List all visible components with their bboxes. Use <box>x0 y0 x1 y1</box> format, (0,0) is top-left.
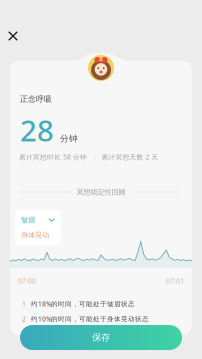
staticText: 正念呼吸 <box>20 94 52 104</box>
staticText: 2 <box>22 314 26 324</box>
button[interactable]: 保存 <box>20 325 182 350</box>
staticText: 保存 <box>92 332 110 343</box>
button[interactable]: 身体晃动 <box>21 228 55 242</box>
staticText: 身体晃动 <box>21 230 49 240</box>
staticText: 约10%的时间，可能处于身体晃动状态 <box>31 314 149 323</box>
button[interactable]: 皱眉 <box>21 213 55 227</box>
staticText: 累计冥想天数 2 天 <box>102 152 159 162</box>
button[interactable]: Close <box>1 24 25 48</box>
staticText: 约18%的时间，可能处于皱眉状态 <box>31 299 135 308</box>
staticText: 皱眉 <box>21 215 35 225</box>
staticText: 1 <box>22 299 26 309</box>
staticText: 累计冥想时长 58 分钟 <box>19 152 87 162</box>
staticText: 分钟 <box>60 133 78 144</box>
staticText: 冥想稳定性回顾 <box>76 187 125 197</box>
staticText: 28 <box>20 110 54 150</box>
staticText: 07:00 <box>18 276 36 286</box>
staticText: 07:01 <box>166 276 184 286</box>
